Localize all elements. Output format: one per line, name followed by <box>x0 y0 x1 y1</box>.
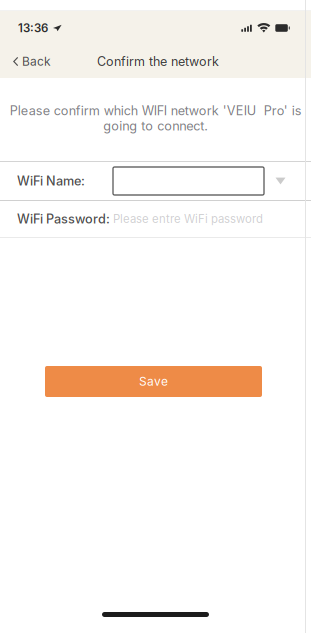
staticText: 13:36 <box>18 21 48 35</box>
staticText: Please entre WiFi password <box>113 212 263 226</box>
button[interactable]: Back <box>0 45 59 78</box>
staticText: Please confirm which WIFI network 'VEIU … <box>9 103 301 134</box>
staticText: Save <box>139 374 168 389</box>
staticText: Confirm the network <box>97 54 219 69</box>
staticText: WiFi Name: <box>17 173 85 189</box>
button[interactable]: Save <box>45 366 262 397</box>
staticText: WiFi Password: <box>17 211 110 227</box>
staticText: Back <box>22 54 51 69</box>
